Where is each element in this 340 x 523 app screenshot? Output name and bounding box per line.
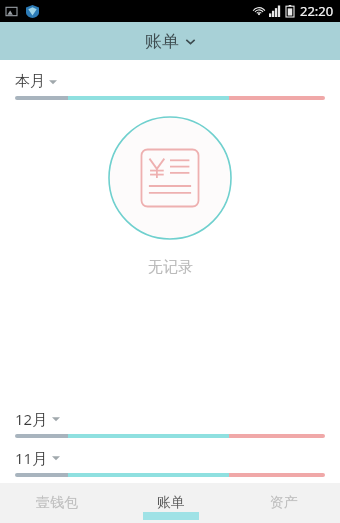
- staticText: 壹钱包: [36, 494, 78, 512]
- staticText: 资产: [270, 494, 298, 512]
- staticText: 11月: [15, 448, 48, 468]
- staticText: 账单: [145, 31, 179, 52]
- staticText: 本月: [15, 72, 45, 91]
- button[interactable]: 账单: [114, 483, 227, 523]
- button[interactable]: 账单: [0, 22, 340, 60]
- staticText: 12月: [15, 409, 48, 429]
- staticText: 无记录: [148, 258, 193, 277]
- button[interactable]: 本月: [0, 72, 340, 100]
- button[interactable]: 资产: [227, 483, 340, 523]
- staticText: 账单: [157, 494, 185, 512]
- button[interactable]: 12月: [0, 409, 340, 438]
- button[interactable]: 11月: [0, 448, 340, 477]
- button[interactable]: 壹钱包: [0, 483, 114, 523]
- staticText: 22:20: [300, 2, 334, 20]
